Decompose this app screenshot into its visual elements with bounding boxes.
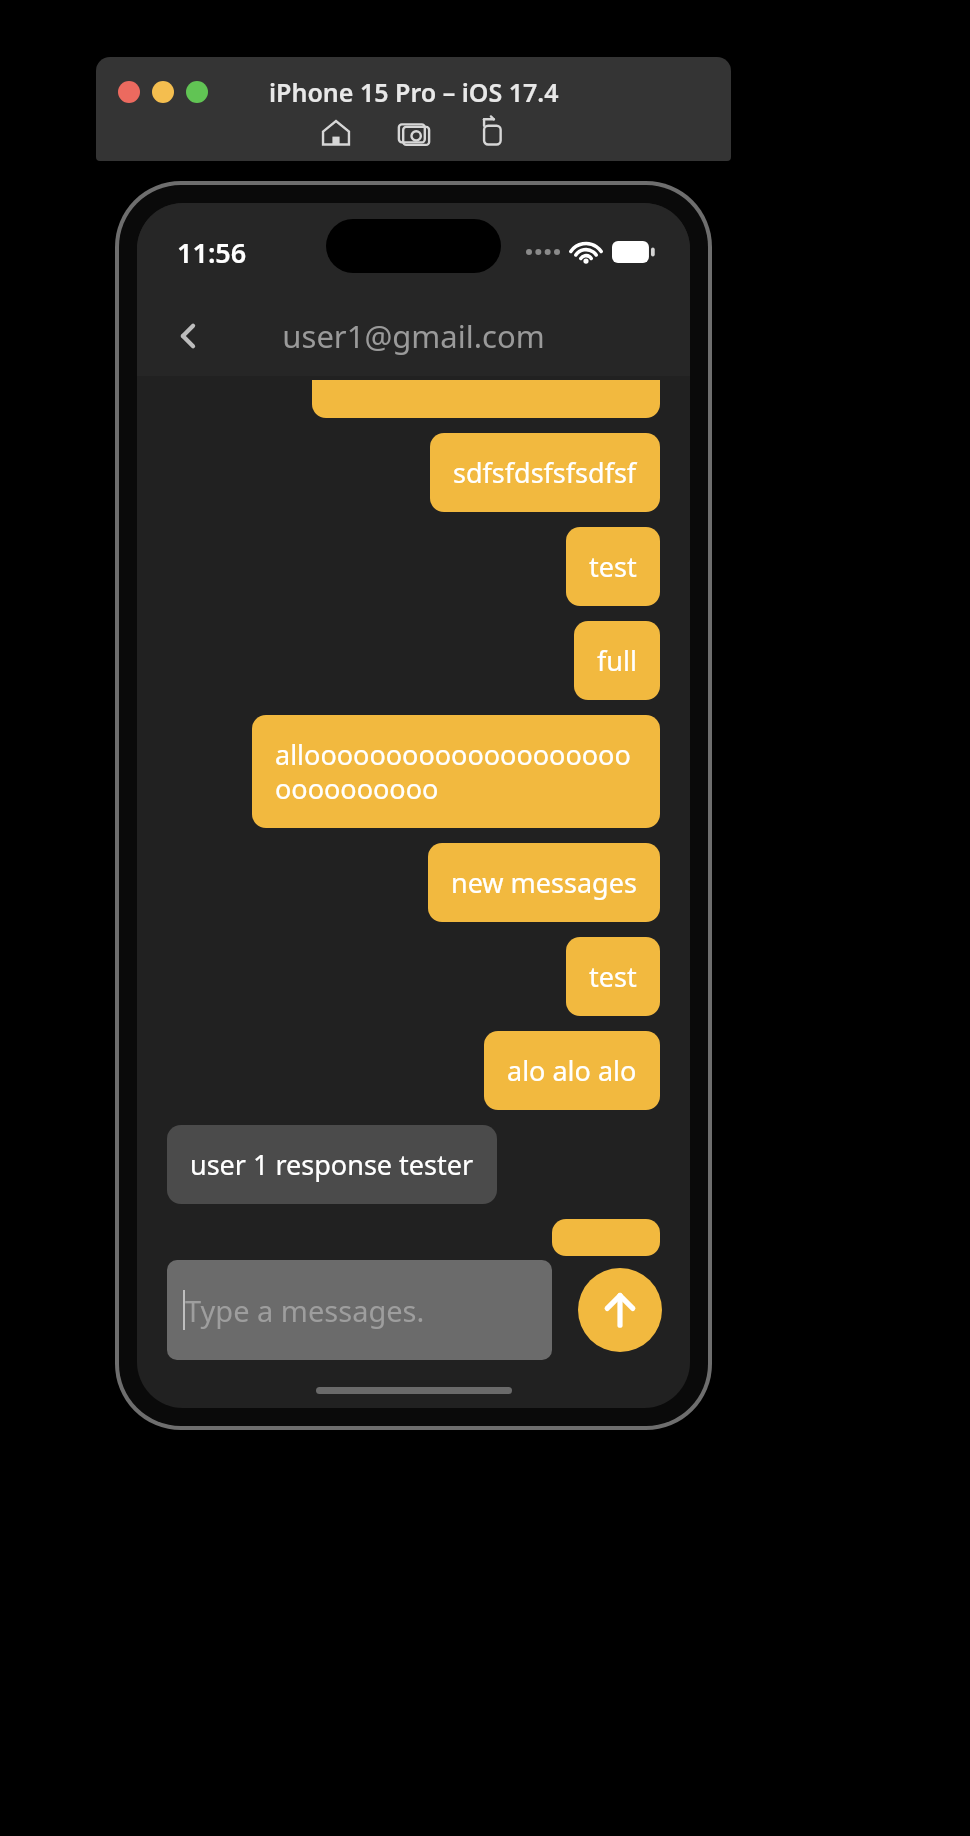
button[interactable]: Home — [318, 115, 354, 151]
staticText: test — [589, 958, 637, 995]
button[interactable]: test — [566, 527, 660, 606]
button[interactable]: Back — [161, 308, 217, 364]
button[interactable]: Type a messages. — [167, 1260, 552, 1360]
button[interactable]: okok — [552, 1219, 660, 1256]
button[interactable]: alo alo alo — [484, 1031, 660, 1110]
staticText: alo alo alo — [507, 1052, 637, 1089]
button[interactable]: Close — [118, 81, 140, 103]
button[interactable]: Send — [578, 1268, 662, 1352]
button[interactable]: new messages — [428, 843, 660, 922]
button[interactable] — [312, 380, 660, 418]
button[interactable]: user 1 response tester — [167, 1125, 497, 1204]
staticText: sdfsfdsfsfsdfsf — [453, 454, 637, 491]
button[interactable]: full — [574, 621, 660, 700]
button[interactable]: Screenshot — [396, 115, 432, 151]
button[interactable]: Rotate — [474, 115, 510, 151]
staticText: alloooooooooooooooooooooooooooooo — [275, 736, 637, 807]
button[interactable]: Zoom — [186, 81, 208, 103]
staticText: iPhone 15 Pro – iOS 17.4 — [269, 75, 559, 109]
staticText: test — [589, 548, 637, 585]
button[interactable]: test — [566, 937, 660, 1016]
staticText: Type a messages. — [185, 1291, 425, 1330]
button[interactable]: Minimize — [152, 81, 174, 103]
staticText: user 1 response tester — [190, 1146, 474, 1183]
staticText: full — [597, 642, 637, 679]
staticText: 11:56 — [177, 234, 247, 271]
button[interactable]: alloooooooooooooooooooooooooooooo — [252, 715, 660, 828]
button[interactable]: sdfsfdsfsfsdfsf — [430, 433, 660, 512]
staticText: new messages — [451, 864, 637, 901]
staticText: user1@gmail.com — [282, 315, 545, 357]
